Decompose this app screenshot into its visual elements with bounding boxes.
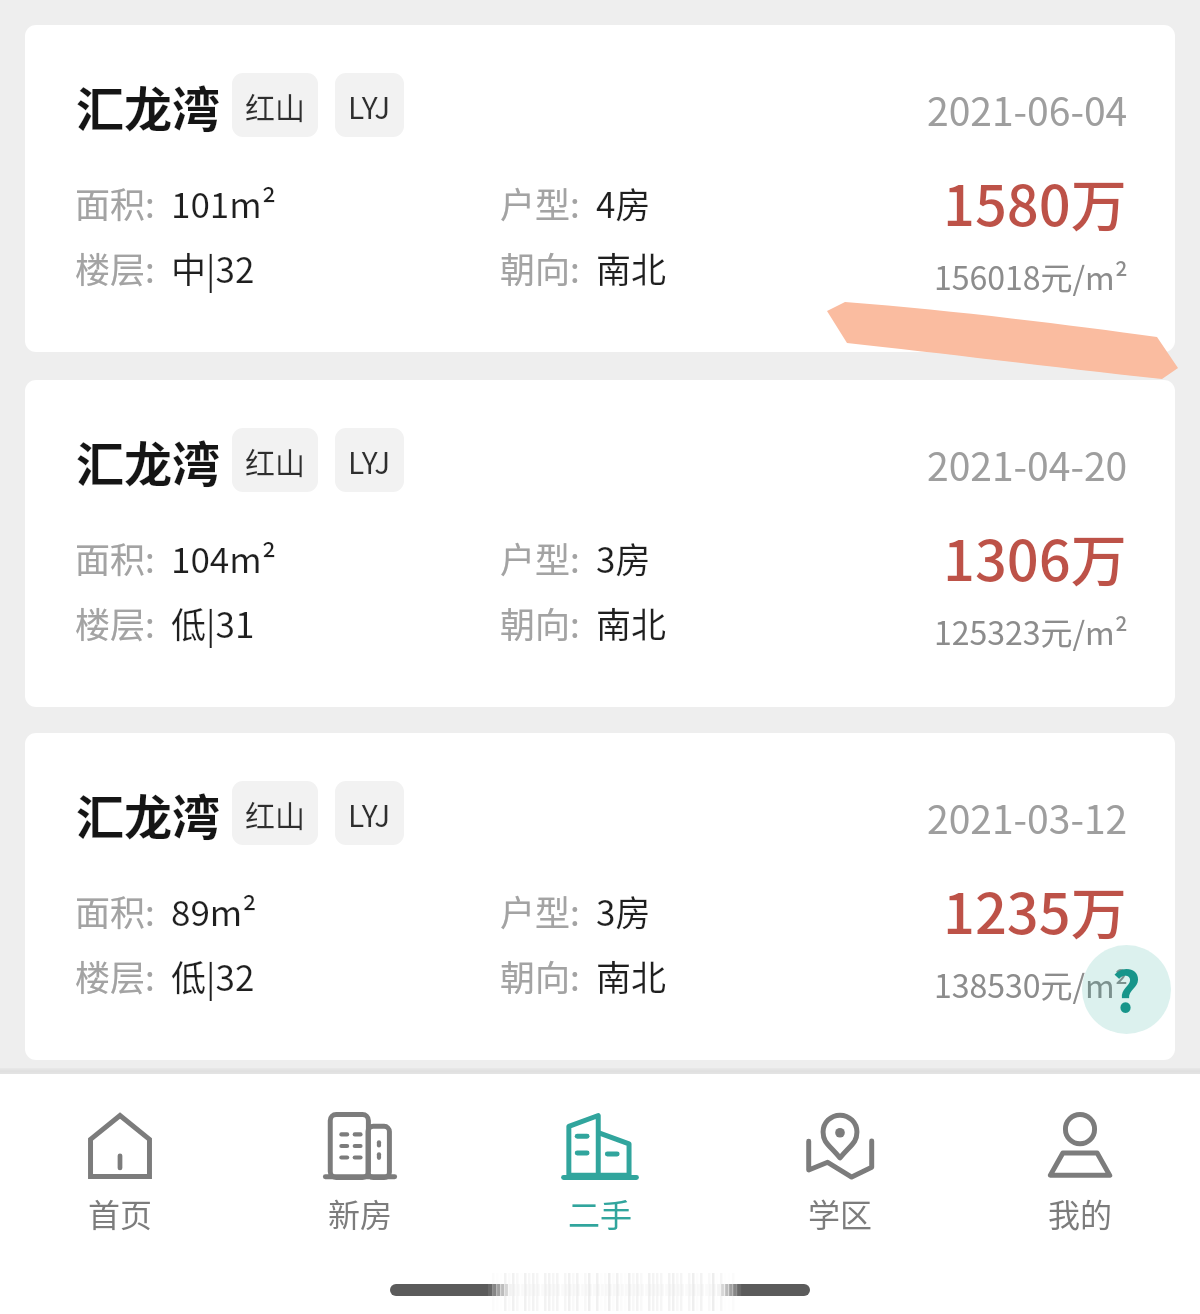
staticText: 红山 (245, 792, 305, 835)
staticText: 1306万 (943, 516, 1127, 597)
staticText: 户型: (500, 532, 580, 583)
staticText: 101m² (171, 177, 277, 228)
staticText: 89m² (171, 885, 257, 936)
staticText: 2021-06-04 (927, 81, 1128, 137)
staticText: 汇龙湾 (76, 426, 221, 496)
staticText: 南北 (596, 950, 667, 1001)
staticText: 户型: (500, 177, 580, 228)
staticText: 面积: (75, 177, 155, 228)
staticText: 3房 (596, 885, 651, 936)
button[interactable]: 汇龙湾 (25, 25, 1175, 352)
staticText: 楼层: (75, 597, 155, 648)
button[interactable]: 汇龙湾 (25, 733, 1175, 1060)
staticText: ? (1112, 947, 1141, 1028)
staticText: 二手 (568, 1190, 633, 1236)
staticText: 中|32 (171, 242, 255, 293)
button[interactable]: 汇龙湾 (25, 380, 1175, 707)
staticText: 朝向: (500, 950, 580, 1001)
staticText: 南北 (596, 242, 667, 293)
staticText: 125323元/m² (934, 608, 1128, 654)
button[interactable]: 新房 (240, 1074, 480, 1260)
button[interactable]: Help (1082, 945, 1171, 1034)
staticText: 红山 (245, 84, 305, 127)
staticText: 红山 (245, 439, 305, 482)
staticText: 1580万 (943, 161, 1127, 242)
staticText: 低|32 (171, 950, 255, 1001)
staticText: 4房 (596, 177, 651, 228)
staticText: 面积: (75, 532, 155, 583)
staticText: 3房 (596, 532, 651, 583)
staticText: 户型: (500, 885, 580, 936)
button[interactable]: 首页 (0, 1074, 240, 1260)
staticText: 138530元/m² (934, 961, 1128, 1007)
staticText: 104m² (171, 532, 277, 583)
staticText: 汇龙湾 (76, 779, 221, 849)
staticText: 156018元/m² (934, 253, 1128, 299)
staticText: LYJ (348, 792, 391, 835)
staticText: LYJ (348, 439, 391, 482)
staticText: 汇龙湾 (76, 71, 221, 141)
staticText: 学区 (808, 1190, 873, 1236)
staticText: 新房 (328, 1190, 393, 1236)
staticText: 2021-04-20 (927, 436, 1128, 492)
staticText: 首页 (88, 1190, 153, 1236)
staticText: 朝向: (500, 242, 580, 293)
staticText: 低|31 (171, 597, 255, 648)
staticText: 我的 (1048, 1190, 1113, 1236)
staticText: LYJ (348, 84, 391, 127)
staticText: 楼层: (75, 950, 155, 1001)
staticText: 楼层: (75, 242, 155, 293)
staticText: 南北 (596, 597, 667, 648)
staticText: 2021-03-12 (927, 789, 1128, 845)
button[interactable]: 二手 (480, 1074, 720, 1260)
button[interactable]: 我的 (960, 1074, 1200, 1260)
staticText: 朝向: (500, 597, 580, 648)
staticText: 面积: (75, 885, 155, 936)
staticText: 1235万 (943, 869, 1127, 950)
button[interactable]: 学区 (720, 1074, 960, 1260)
